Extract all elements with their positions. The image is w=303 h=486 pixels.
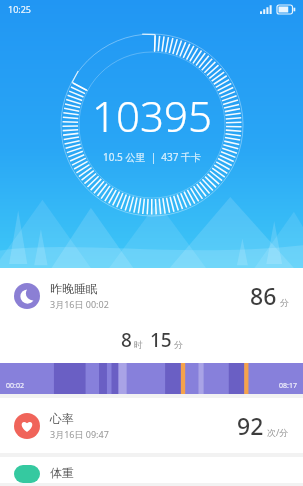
- staticText: 昨晚睡眠: [50, 281, 98, 296]
- staticText: 时: [134, 339, 143, 350]
- staticText: 10395: [92, 87, 212, 144]
- staticText: 86: [250, 280, 277, 311]
- staticText: 8: [121, 327, 132, 353]
- staticText: 10:25: [8, 3, 32, 15]
- staticText: 08:17: [279, 381, 297, 391]
- staticText: 体重: [50, 465, 74, 480]
- staticText: 92: [237, 410, 264, 441]
- button[interactable]: 心率: [0, 398, 303, 453]
- staticText: 15: [150, 327, 172, 353]
- staticText: 心率: [50, 411, 74, 426]
- button[interactable]: 昨晚睡眠: [0, 268, 303, 394]
- staticText: 分: [174, 339, 183, 350]
- button[interactable]: 体重: [0, 457, 303, 483]
- staticText: 分: [280, 297, 289, 308]
- staticText: 3月16日 09:47: [50, 428, 109, 440]
- staticText: 00:02: [6, 381, 24, 391]
- staticText: 10.5 公里 | 437 千卡: [103, 150, 202, 164]
- staticText: 次/分: [267, 426, 289, 438]
- staticText: 3月16日 00:02: [50, 298, 109, 310]
